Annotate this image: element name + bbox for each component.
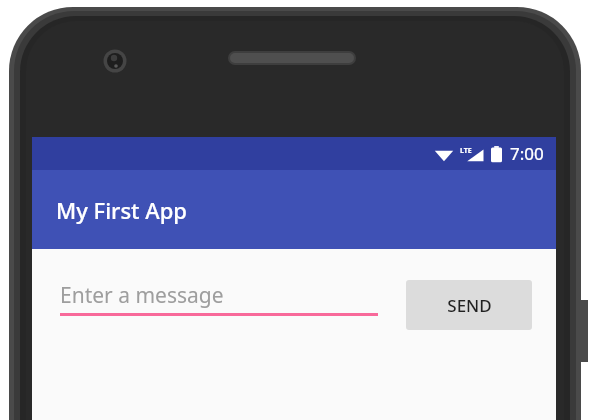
staticText: SEND: [447, 294, 492, 317]
staticText: My First App: [56, 195, 187, 225]
button[interactable]: Enter a message: [60, 277, 378, 316]
staticText: Enter a message: [60, 281, 224, 310]
staticText: LTE: [460, 146, 472, 156]
staticText: 7:00: [510, 142, 544, 165]
button[interactable]: SEND: [406, 280, 532, 330]
